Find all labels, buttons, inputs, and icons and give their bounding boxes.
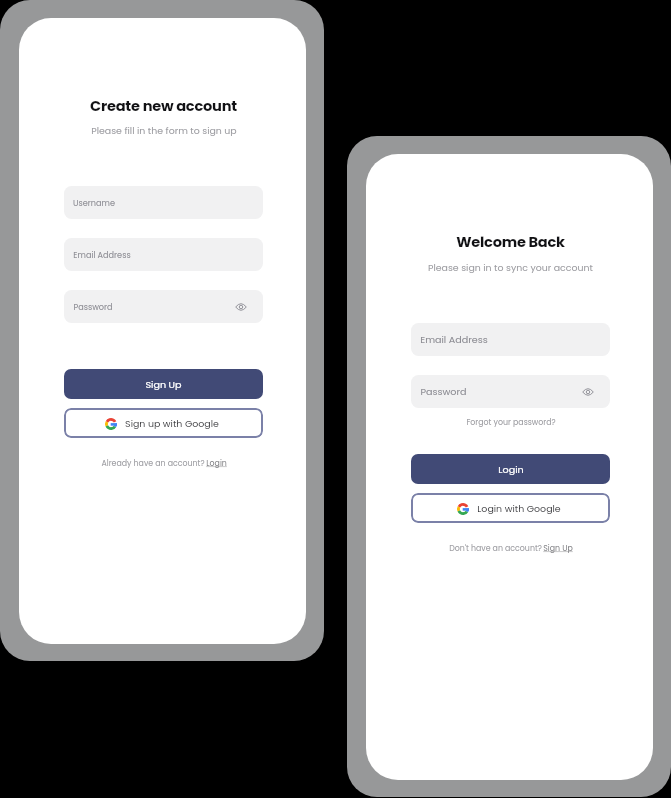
- staticText: Sign Up: [145, 378, 182, 391]
- staticText: Please sign in to sync your account: [428, 261, 593, 274]
- staticText: Email Address: [73, 249, 131, 260]
- button[interactable]: Show password: [580, 384, 596, 400]
- button[interactable]: Sign up with Google: [64, 408, 263, 438]
- staticText: Please fill in the form to sign up: [91, 124, 237, 137]
- button[interactable]: Show password: [233, 299, 249, 315]
- button[interactable]: Password: [64, 290, 263, 323]
- button[interactable]: Forgot your password?: [466, 417, 556, 428]
- button[interactable]: Login: [411, 454, 610, 484]
- staticText: Sign up with Google: [125, 417, 219, 430]
- staticText: Don't have an account?: [448, 543, 543, 554]
- staticText: Welcome Back: [456, 232, 565, 252]
- button[interactable]: Login with Google: [411, 493, 610, 523]
- button[interactable]: Email Address: [411, 323, 610, 356]
- staticText: Login with Google: [477, 502, 561, 515]
- staticText: Username: [73, 197, 115, 208]
- staticText: Email Address: [420, 333, 488, 346]
- staticText: Password: [73, 301, 113, 312]
- staticText: Password: [420, 385, 467, 398]
- button[interactable]: Password: [411, 375, 610, 408]
- staticText: Already have an account?: [100, 458, 206, 469]
- button[interactable]: Login: [206, 458, 227, 469]
- button[interactable]: Sign Up: [543, 543, 573, 554]
- staticText: Login: [498, 463, 524, 476]
- staticText: Create new account: [90, 96, 237, 116]
- button[interactable]: Sign Up: [64, 369, 263, 399]
- button[interactable]: Email Address: [64, 238, 263, 271]
- button[interactable]: Username: [64, 186, 263, 219]
